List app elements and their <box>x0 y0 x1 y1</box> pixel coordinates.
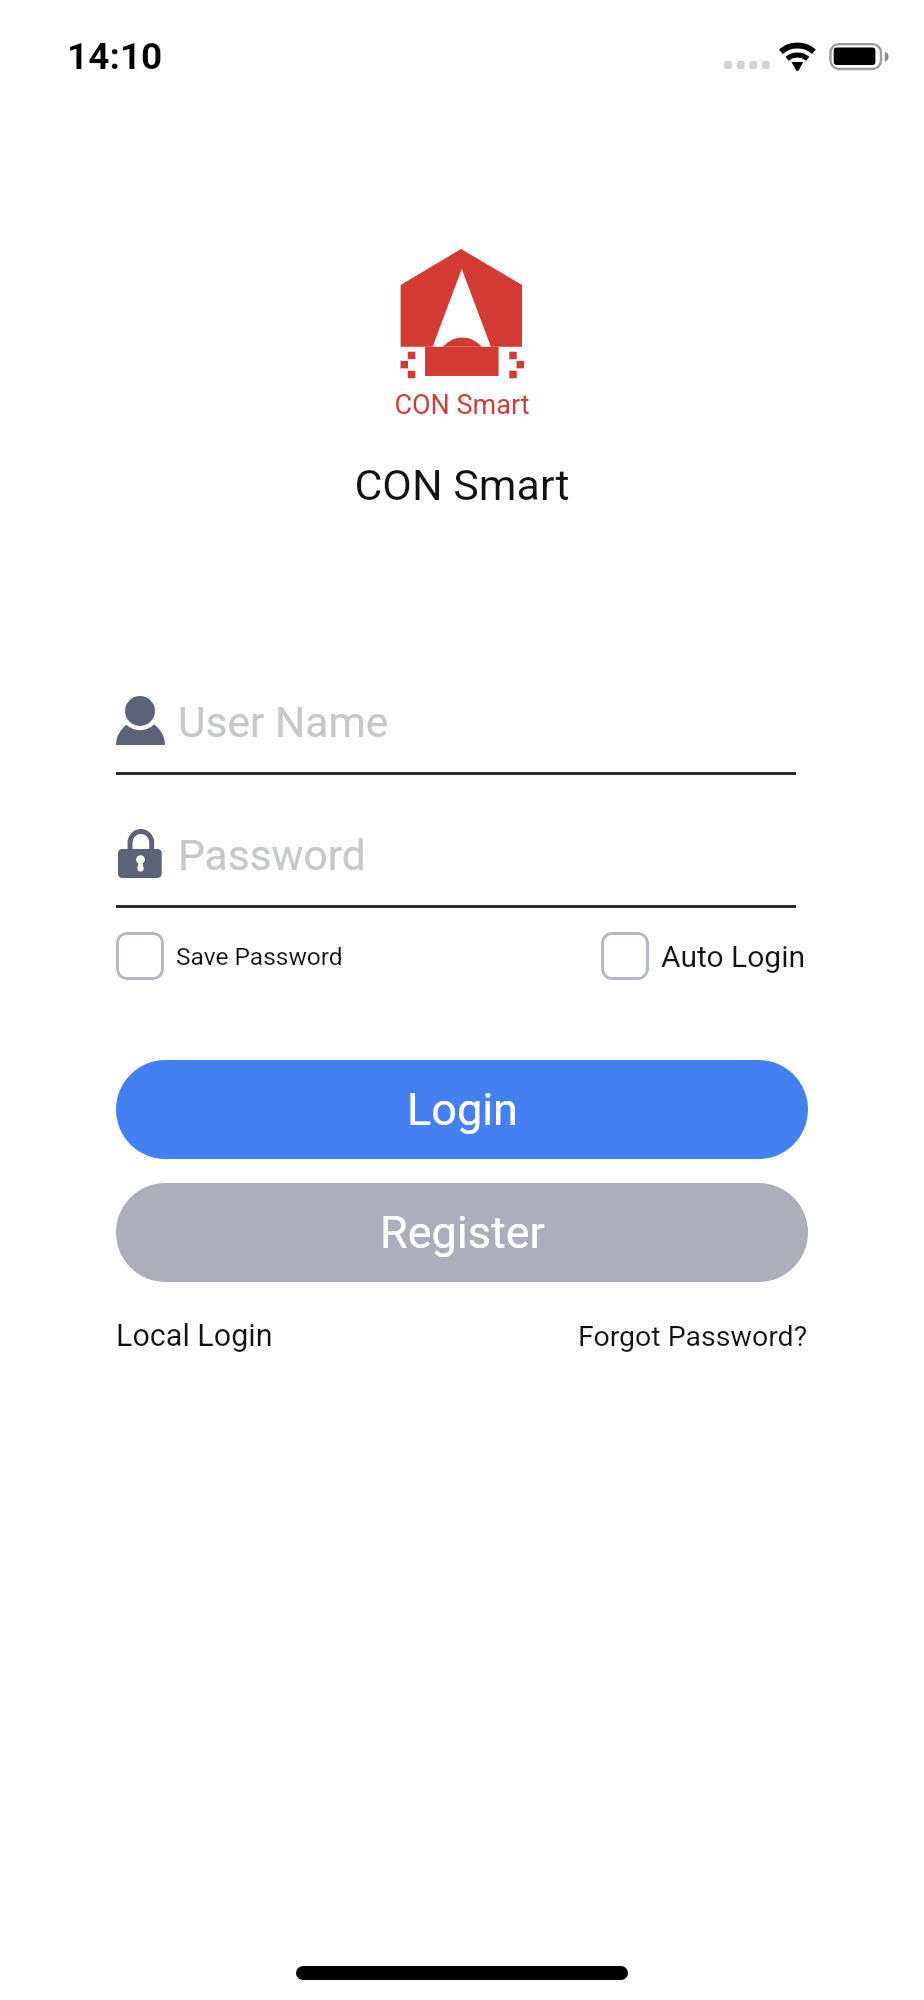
staticText: Password <box>178 831 366 881</box>
staticText: Auto Login <box>661 939 805 974</box>
button[interactable]: Local Login <box>116 1318 273 1354</box>
button[interactable]: User Name <box>116 690 796 752</box>
staticText: CON Smart <box>0 389 924 421</box>
staticText: Login <box>407 1083 518 1136</box>
staticText: Save Password <box>176 942 343 971</box>
button[interactable]: Password <box>116 823 796 885</box>
button[interactable]: Login <box>116 1060 808 1159</box>
button[interactable]: Register <box>116 1183 808 1282</box>
staticText: Register <box>380 1206 545 1259</box>
staticText: User Name <box>178 698 389 748</box>
button[interactable]: Forgot Password? <box>578 1320 808 1353</box>
button[interactable]: Save Password <box>116 932 343 980</box>
staticText: 14:10 <box>67 35 163 78</box>
button[interactable]: Auto Login <box>601 932 805 980</box>
staticText: Forgot Password? <box>578 1320 808 1353</box>
staticText: CON Smart <box>0 460 924 510</box>
staticText: Local Login <box>116 1318 273 1354</box>
